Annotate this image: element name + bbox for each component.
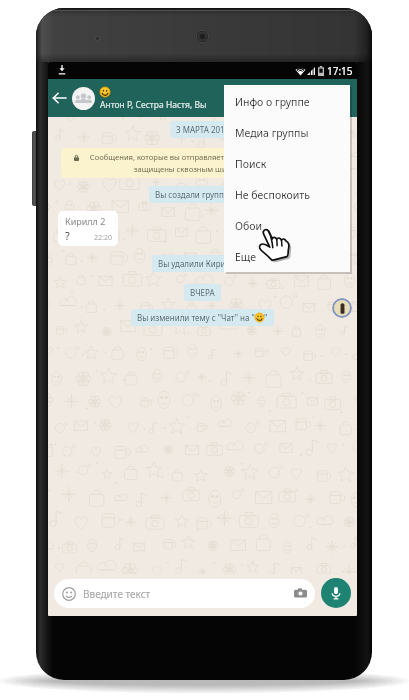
staticText: Еще [235,250,257,264]
button[interactable]: Record voice message [321,578,351,608]
staticText: ? [65,228,70,243]
button[interactable]: Поиск [224,148,350,179]
button[interactable]: Введите текст [62,579,307,608]
button[interactable]: Back [49,81,68,115]
staticText: 17:15 [327,64,353,78]
staticText: Обои [235,219,263,233]
staticText: Не беспокоить [235,188,310,202]
staticText: ВЧЕРА [190,287,215,298]
button[interactable]: Group avatar [72,87,95,110]
button[interactable]: Сообщения, которые вы отправляете в этот… [66,152,339,174]
button[interactable]: Вы создали группу "Чат" [155,189,251,200]
staticText: Введите текст [83,587,151,601]
button[interactable]: Кирилл 2 [65,215,112,243]
button[interactable]: Еще [224,241,350,272]
staticText: Кирилл 2 [65,215,106,227]
button[interactable]: Инфо о группе [224,86,350,117]
staticText: Сообщения, которые вы отправляете в этот… [66,152,339,174]
button[interactable]: Не беспокоить [224,179,350,210]
button[interactable]: Camera [294,587,307,600]
staticText: Вы создали группу "Чат" [155,189,251,200]
staticText: Медиа группы [235,126,309,140]
staticText: 22:20 [94,233,112,243]
button[interactable]: Медиа группы [224,117,350,148]
button[interactable]: Contact photo [332,298,352,318]
staticText: " [264,312,268,323]
staticText: Вы удалили Кирилла 2 [158,258,247,269]
staticText: Поиск [235,157,267,171]
staticText: Антон Р, Сестра Настя, Вы [100,99,207,111]
staticText: Инфо о группе [235,95,310,109]
button[interactable]: Вы удалили Кирилла 2 [158,258,247,269]
staticText: 3 МАРТА 2017 [176,124,230,135]
button[interactable]: 3 МАРТА 2017 [176,124,230,135]
button[interactable]: Вы изменили тему с "Чат" на " [137,312,268,323]
staticText: Вы изменили тему с "Чат" на " [137,312,255,323]
button[interactable]: ВЧЕРА [190,287,215,298]
button[interactable]: Обои [224,210,350,241]
